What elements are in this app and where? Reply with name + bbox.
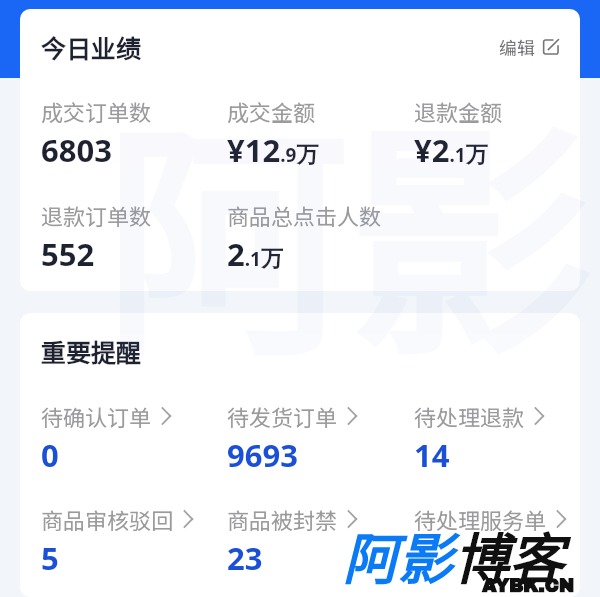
staticText: 0 bbox=[41, 434, 59, 476]
button[interactable]: 商品被封禁 bbox=[206, 503, 393, 579]
staticText: ¥2.1万 bbox=[414, 129, 488, 171]
staticText: 今日业绩 bbox=[41, 29, 142, 65]
button[interactable]: 待处理服务单 bbox=[393, 503, 580, 537]
button[interactable]: 待处理退款 bbox=[393, 400, 580, 476]
other: Edit bbox=[543, 39, 559, 55]
staticText: 成交金额 bbox=[227, 95, 316, 127]
staticText: 5 bbox=[41, 537, 59, 579]
staticText: 待处理退款 bbox=[414, 400, 525, 432]
staticText: 阿影 bbox=[343, 515, 454, 595]
staticText: 编辑 bbox=[499, 34, 535, 60]
staticText: 23 bbox=[227, 537, 263, 579]
staticText: 商品审核驳回 bbox=[41, 503, 174, 535]
button[interactable]: 待发货订单 bbox=[206, 400, 393, 476]
staticText: 待确认订单 bbox=[41, 400, 152, 432]
staticText: 待发货订单 bbox=[227, 400, 338, 432]
button[interactable]: 商品审核驳回 bbox=[20, 503, 206, 579]
staticText: 博客 bbox=[454, 515, 565, 595]
button[interactable]: 编辑 bbox=[499, 31, 559, 63]
staticText: 阿影 bbox=[104, 48, 594, 403]
staticText: 2.1万 bbox=[227, 233, 283, 275]
staticText: 9693 bbox=[227, 434, 298, 476]
staticText: 552 bbox=[41, 233, 95, 275]
staticText: ¥12.9万 bbox=[227, 129, 319, 171]
staticText: 退款订单数 bbox=[41, 199, 152, 231]
button[interactable]: 待确认订单 bbox=[20, 400, 206, 476]
staticText: 商品被封禁 bbox=[227, 503, 338, 535]
staticText: 14 bbox=[414, 434, 450, 476]
staticText: 退款金额 bbox=[414, 95, 503, 127]
staticText: 6803 bbox=[41, 129, 112, 171]
staticText: AYBK.CN bbox=[482, 576, 574, 596]
staticText: 成交订单数 bbox=[41, 95, 152, 127]
staticText: 商品总点击人数 bbox=[227, 199, 382, 231]
staticText: 重要提醒 bbox=[41, 333, 142, 369]
staticText: 待处理服务单 bbox=[414, 503, 547, 535]
